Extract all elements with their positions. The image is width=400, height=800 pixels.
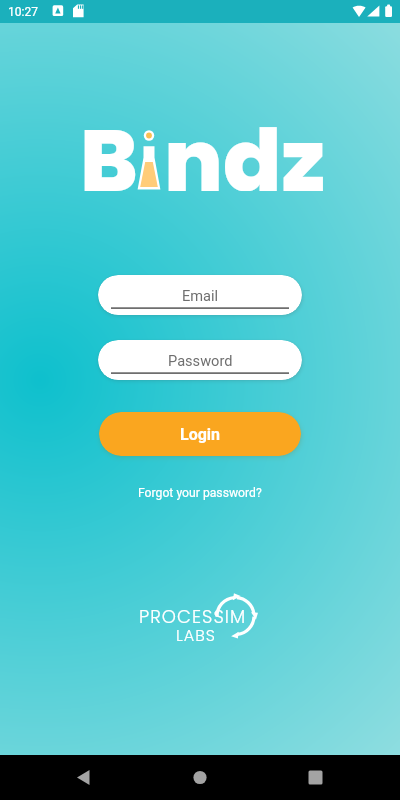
staticText: ndz xyxy=(164,101,326,191)
button[interactable]: Back xyxy=(53,755,113,800)
button[interactable]: Home xyxy=(170,755,230,800)
staticText: 10:27 xyxy=(8,5,38,19)
button[interactable]: Recent apps xyxy=(285,755,345,800)
staticText: LABS xyxy=(176,624,217,646)
button[interactable]: Password xyxy=(98,340,302,380)
button[interactable]: Forgot your password? xyxy=(138,486,262,500)
button[interactable]: Login xyxy=(99,412,301,456)
staticText: Login xyxy=(180,425,221,444)
staticText: Email xyxy=(182,287,219,304)
staticText: PROCESSIM xyxy=(139,604,247,629)
button[interactable]: Email xyxy=(98,275,302,315)
staticText: B xyxy=(80,101,138,191)
staticText: Password xyxy=(168,352,233,369)
